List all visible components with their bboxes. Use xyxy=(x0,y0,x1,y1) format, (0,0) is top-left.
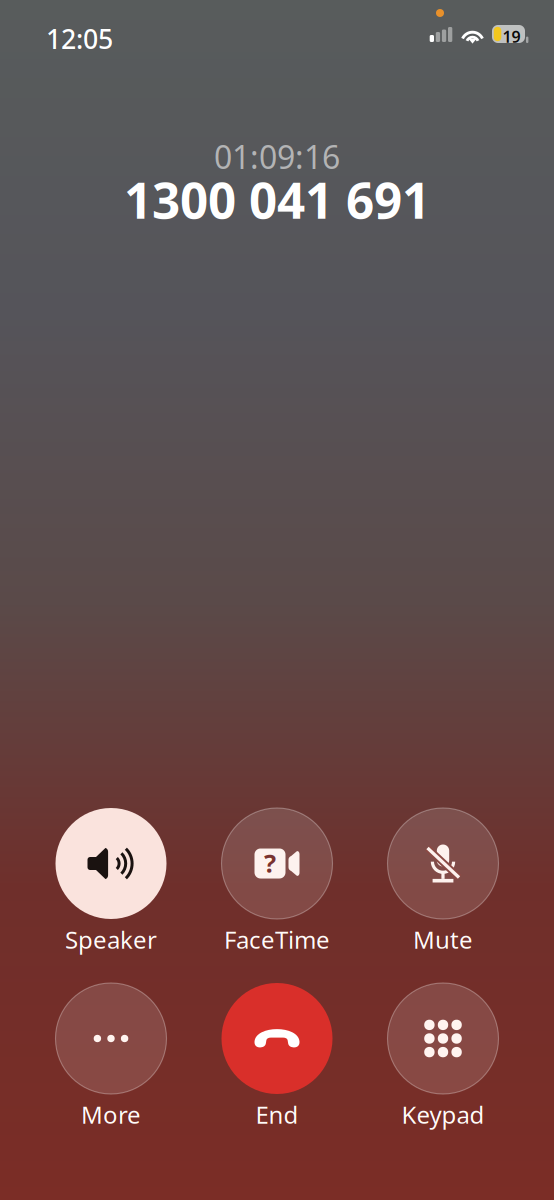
staticText: End xyxy=(255,1099,298,1130)
staticText: ? xyxy=(264,846,276,880)
button[interactable]: Speaker xyxy=(55,808,166,960)
button[interactable]: Mute xyxy=(387,808,498,960)
staticText: More xyxy=(81,1099,141,1130)
button[interactable]: Keypad xyxy=(387,983,498,1135)
staticText: Mute xyxy=(413,924,473,955)
button[interactable]: End xyxy=(221,983,332,1135)
staticText: FaceTime xyxy=(224,924,330,955)
staticText: Speaker xyxy=(65,924,157,955)
staticText: 1300 041 691 xyxy=(124,167,430,232)
staticText: Keypad xyxy=(401,1099,484,1130)
button[interactable]: ? xyxy=(221,808,332,960)
button[interactable]: More xyxy=(55,983,166,1135)
staticText: 12:05 xyxy=(46,21,113,56)
staticText: 19 xyxy=(502,26,520,47)
staticText: 01:09:16 xyxy=(214,135,340,178)
